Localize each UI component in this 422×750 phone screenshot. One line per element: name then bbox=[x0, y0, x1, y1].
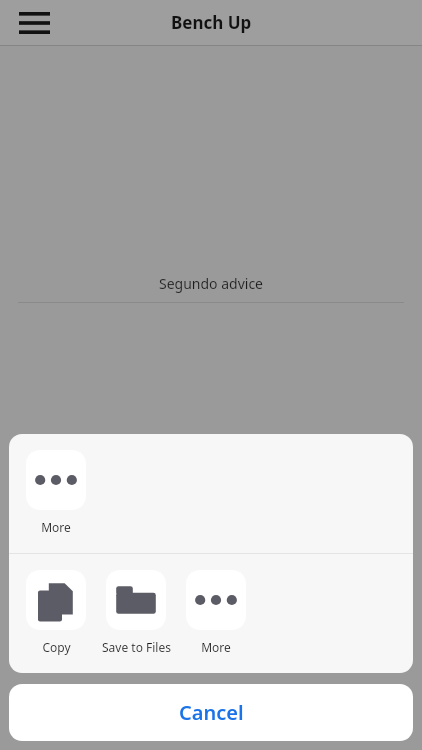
staticText: Cancel bbox=[179, 699, 244, 726]
staticText: Bench Up bbox=[171, 11, 252, 34]
button[interactable]: More bbox=[16, 448, 96, 537]
button[interactable]: Menu bbox=[12, 1, 56, 45]
button[interactable]: Cancel bbox=[9, 684, 413, 741]
staticText: Segundo advice bbox=[0, 274, 422, 293]
staticText: Save to Files bbox=[102, 639, 171, 655]
staticText: Copy bbox=[42, 639, 71, 655]
staticText: More bbox=[41, 519, 71, 535]
staticText: More bbox=[201, 639, 231, 655]
button[interactable]: Save to Files bbox=[96, 568, 176, 657]
button[interactable]: More bbox=[176, 568, 256, 657]
button[interactable]: Copy bbox=[16, 568, 96, 657]
